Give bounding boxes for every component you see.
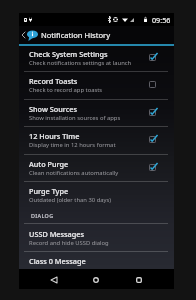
button[interactable]: Recent apps	[128, 270, 150, 289]
staticText: Outdated (older than 30 days)	[29, 196, 112, 204]
button[interactable]: 12 Hours Time	[19, 126, 174, 153]
staticText: DIALOG	[31, 212, 54, 219]
staticText: Show Sources	[29, 104, 77, 114]
button[interactable]: Record Toasts	[19, 71, 174, 98]
button[interactable]: USSD Messages	[19, 224, 174, 251]
button[interactable]: Auto Purge	[19, 154, 174, 181]
staticText: Purge Type	[29, 186, 69, 196]
button[interactable]: Purge Type	[19, 181, 174, 208]
button[interactable]: Back	[43, 270, 65, 289]
button[interactable]: Navigate up	[19, 26, 27, 44]
button[interactable]: Check System Settings	[19, 44, 174, 71]
staticText: Clean notifications automatically	[29, 169, 119, 177]
staticText: Display time in 12 hours format	[29, 141, 116, 149]
staticText: Notification History	[41, 30, 111, 40]
staticText: Check System Settings	[29, 49, 108, 59]
staticText: Record and hide USSD dialog	[29, 239, 109, 247]
staticText: Class 0 Message	[29, 256, 86, 266]
button[interactable]: Show Sources	[19, 99, 174, 126]
staticText: 12 Hours Time	[29, 131, 80, 141]
staticText: Auto Purge	[29, 159, 69, 169]
button[interactable]: Home	[85, 270, 107, 289]
staticText: Show installation sources of apps	[29, 114, 121, 122]
staticText: Record Toasts	[29, 76, 78, 86]
staticText: 09:56	[152, 15, 171, 25]
staticText: USSD Messages	[29, 229, 85, 239]
button[interactable]: Class 0 Message	[19, 251, 174, 278]
staticText: Check to record app toasts	[29, 86, 103, 94]
staticText: Check notifications settings at launch	[29, 59, 132, 67]
